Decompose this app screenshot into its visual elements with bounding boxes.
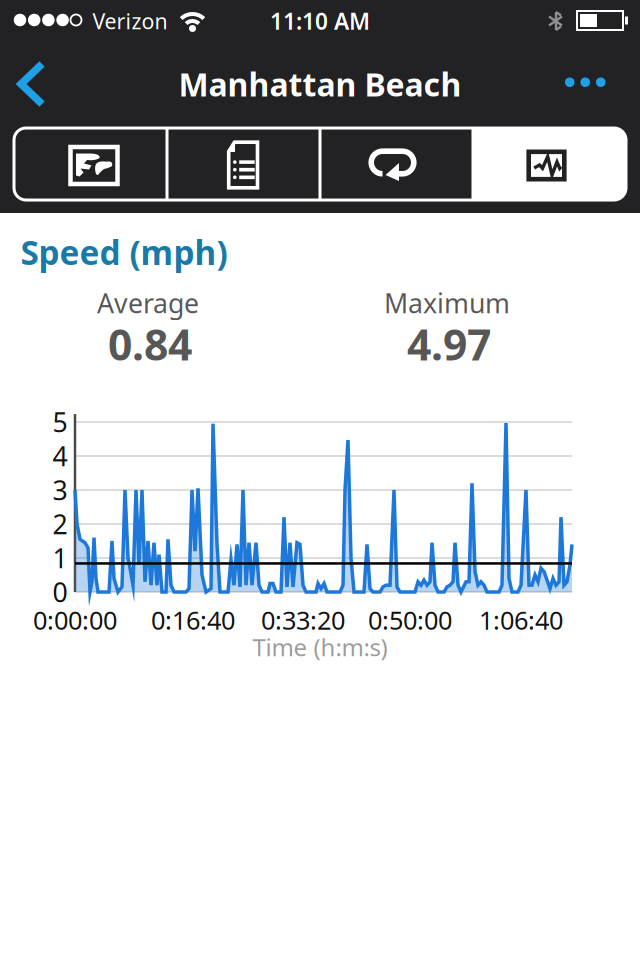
button[interactable]: Laps <box>320 128 473 200</box>
button[interactable]: Details <box>167 128 320 200</box>
staticText: 2 <box>52 506 67 542</box>
staticText: Maximum <box>384 285 510 321</box>
staticText: 0.84 <box>108 316 192 372</box>
staticText: 4.97 <box>407 316 491 372</box>
staticText: 0:33:20 <box>261 603 345 637</box>
staticText: Speed (mph) <box>20 230 227 274</box>
staticText: 0 <box>52 574 67 610</box>
button[interactable]: Back <box>8 56 52 112</box>
button[interactable]: Map <box>14 128 167 200</box>
staticText: 4 <box>52 438 67 474</box>
staticText: 0:00:00 <box>33 603 117 637</box>
staticText: Time (h:m:s) <box>252 631 387 663</box>
button[interactable]: Charts <box>473 128 626 200</box>
staticText: 0:16:40 <box>151 603 235 637</box>
staticText: 5 <box>52 404 67 440</box>
staticText: 1 <box>52 540 67 576</box>
staticText: 11:10 AM <box>270 6 370 36</box>
staticText: Verizon <box>92 7 167 35</box>
button[interactable]: More <box>557 68 613 96</box>
staticText: 0:50:00 <box>368 603 452 637</box>
staticText: Manhattan Beach <box>178 63 461 105</box>
staticText: 1:06:40 <box>479 603 563 637</box>
staticText: 3 <box>52 472 67 508</box>
staticText: Average <box>97 285 199 321</box>
